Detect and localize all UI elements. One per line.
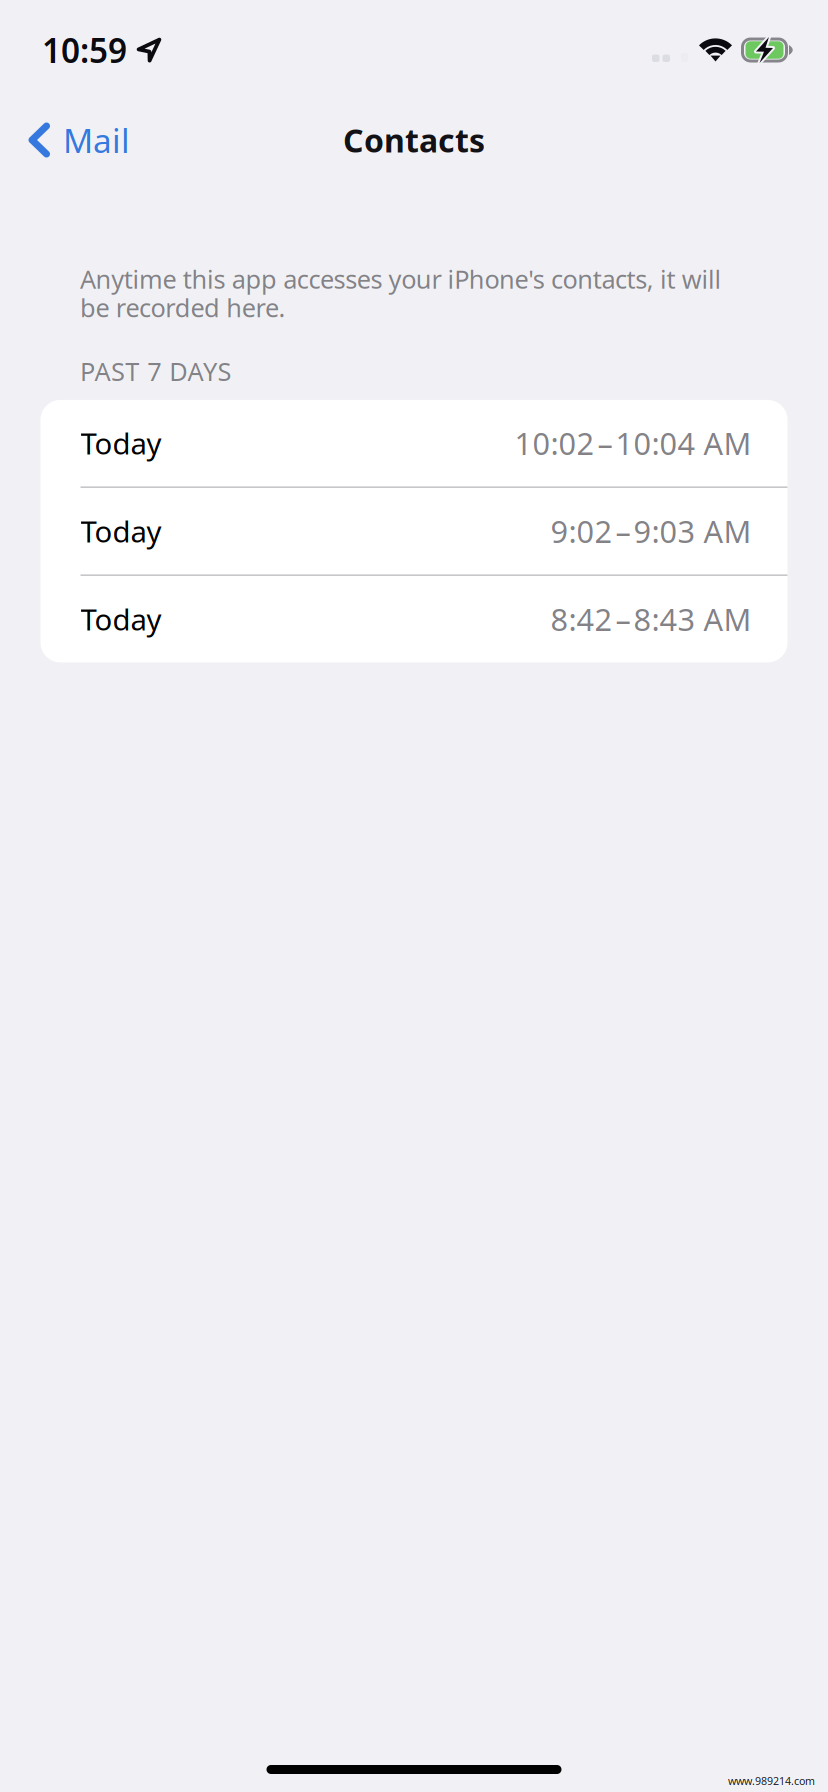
staticText: Today	[80, 600, 161, 639]
staticText: 10:59	[42, 28, 127, 72]
staticText: Mail	[63, 118, 130, 162]
staticText: 10:02 – 10:04 AM	[514, 423, 751, 463]
button[interactable]: Mail	[0, 100, 148, 180]
staticText: Today	[80, 424, 161, 463]
staticText: www.989214.com	[728, 1774, 815, 1788]
staticText: 8:42 – 8:43 AM	[550, 599, 751, 639]
staticText: 9:02 – 9:03 AM	[550, 511, 751, 551]
button[interactable]: Today	[40, 576, 787, 662]
button[interactable]: Today	[40, 400, 787, 486]
button[interactable]: Today	[40, 488, 787, 574]
staticText: PAST 7 DAYS	[80, 354, 231, 388]
staticText: Anytime this app accesses your iPhone's …	[80, 262, 722, 324]
staticText: Today	[80, 512, 161, 551]
staticText: Contacts	[343, 119, 485, 161]
